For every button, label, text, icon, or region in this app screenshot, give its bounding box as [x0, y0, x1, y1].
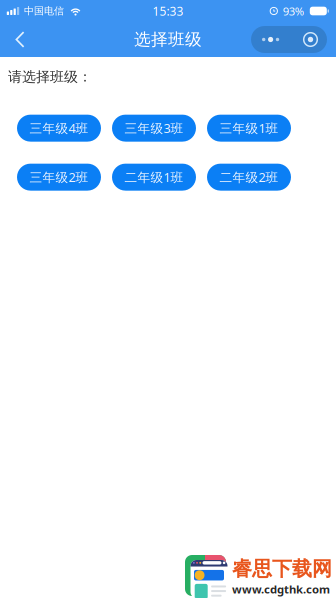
staticText: 请选择班级：	[8, 68, 92, 86]
staticText: 二年级2班	[219, 168, 278, 186]
button[interactable]: 三年级4班	[17, 115, 101, 142]
button[interactable]: 三年级2班	[17, 164, 101, 191]
button[interactable]: More	[251, 26, 327, 53]
button[interactable]: 三年级3班	[112, 115, 196, 142]
staticText: 三年级3班	[124, 119, 183, 137]
staticText: 93%	[283, 3, 304, 19]
staticText: 15:33	[152, 3, 183, 19]
button[interactable]: Back	[0, 22, 40, 57]
staticText: 选择班级	[134, 29, 202, 50]
button[interactable]: 二年级1班	[112, 164, 196, 191]
button[interactable]: 二年级2班	[207, 164, 291, 191]
staticText: 三年级4班	[29, 119, 88, 137]
staticText: 三年级2班	[29, 168, 88, 186]
staticText: 三年级1班	[219, 119, 278, 137]
staticText: www.cdgthk.com	[232, 581, 330, 597]
staticText: 睿思下载网	[232, 556, 332, 581]
button[interactable]: 三年级1班	[207, 115, 291, 142]
staticText: 中国电信	[24, 5, 64, 17]
staticText: 二年级1班	[124, 168, 183, 186]
